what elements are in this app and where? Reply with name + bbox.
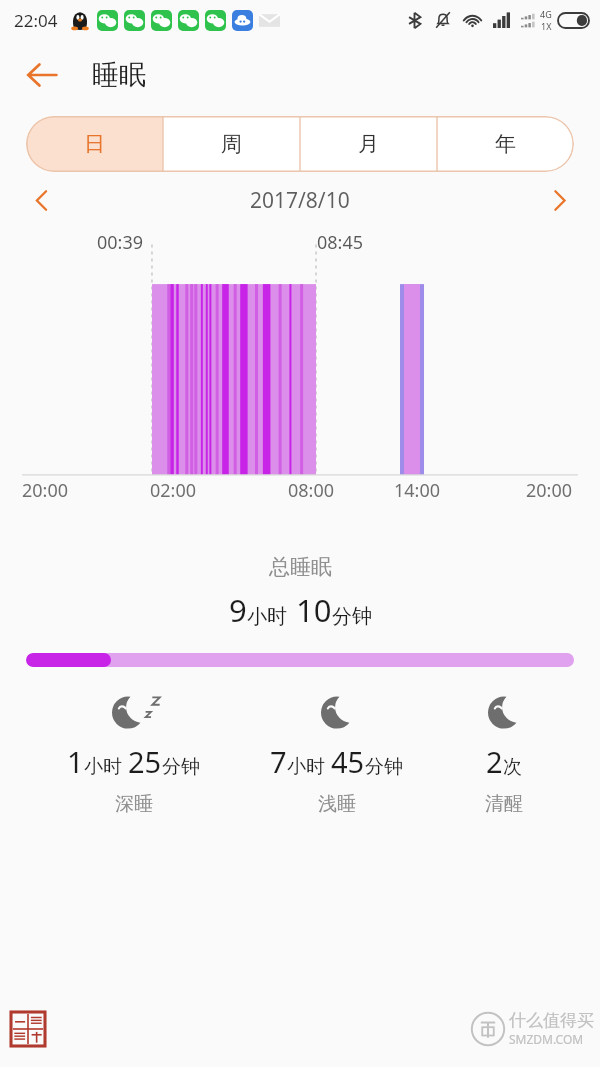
staticText: SMZDM.COM (509, 1031, 584, 1047)
button[interactable]: 周 (163, 116, 300, 172)
staticText: 2 (486, 742, 503, 781)
staticText: 总睡眠 (269, 554, 332, 580)
staticText: 分钟 (162, 755, 200, 779)
staticText: 次 (503, 755, 522, 779)
staticText: 1 (67, 742, 84, 781)
staticText: 睡眠 (92, 58, 146, 92)
staticText: 月 (358, 131, 379, 157)
button[interactable]: 月 (300, 116, 437, 172)
staticText: 08:00 (288, 478, 335, 503)
staticText: 10 (296, 589, 332, 631)
button[interactable]: 1 (63, 691, 204, 816)
button[interactable]: Back (14, 47, 70, 103)
staticText: 08:45 (317, 230, 364, 255)
button[interactable]: 2 (470, 691, 538, 816)
button[interactable]: 年 (437, 116, 574, 172)
staticText: 分钟 (365, 755, 403, 779)
staticText: 深睡 (115, 792, 153, 816)
staticText: 小时 (247, 604, 287, 629)
staticText: 7 (270, 742, 287, 781)
button[interactable]: 日 (26, 116, 163, 172)
staticText: 45 (331, 742, 365, 781)
staticText: 周 (221, 131, 242, 157)
staticText: 9 (229, 589, 247, 631)
staticText: 00:39 (97, 230, 144, 255)
staticText: 02:00 (150, 478, 197, 503)
staticText: 4G (540, 8, 552, 20)
staticText: 小时 (287, 755, 325, 779)
staticText: 20:00 (526, 478, 573, 503)
button[interactable]: Previous day (18, 177, 64, 223)
staticText: 分钟 (332, 604, 372, 629)
staticText: 2017/8/10 (250, 186, 350, 215)
staticText: 清醒 (485, 792, 523, 816)
staticText: 小时 (84, 755, 122, 779)
button[interactable]: 7 (266, 691, 407, 816)
staticText: 1X (541, 20, 552, 32)
button[interactable]: Next day (536, 177, 582, 223)
staticText: 年 (495, 131, 516, 157)
staticText: 20:00 (22, 478, 69, 503)
staticText: 浅睡 (318, 792, 356, 816)
staticText: 25 (128, 742, 162, 781)
staticText: 什么值得买 (509, 1010, 594, 1031)
staticText: 14:00 (394, 478, 441, 503)
staticText: 日 (84, 131, 105, 157)
staticText: 22:04 (14, 9, 58, 32)
